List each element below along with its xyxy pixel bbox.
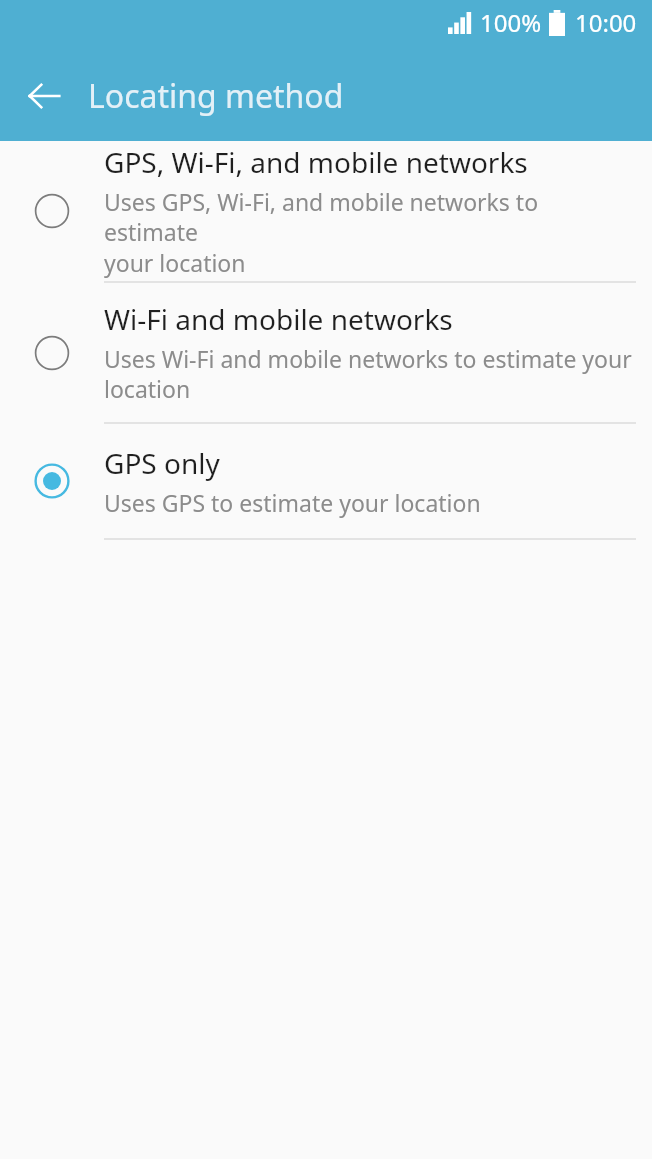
staticText: GPS only	[104, 444, 220, 482]
button[interactable]: GPS, Wi-Fi, and mobile networks	[0, 141, 652, 281]
staticText: Uses GPS, Wi-Fi, and mobile networks to …	[104, 186, 636, 279]
button[interactable]: GPS only	[0, 424, 652, 538]
staticText: Uses Wi-Fi and mobile networks to estima…	[104, 343, 632, 405]
button[interactable]: Wi-Fi and mobile networks	[0, 283, 652, 422]
staticText: 10:00	[575, 6, 637, 39]
staticText: Wi-Fi and mobile networks	[104, 300, 453, 338]
button[interactable]: Back	[16, 68, 72, 124]
staticText: 100%	[480, 6, 542, 39]
staticText: GPS, Wi-Fi, and mobile networks	[104, 143, 528, 181]
staticText: Uses GPS to estimate your location	[104, 487, 481, 518]
staticText: Locating method	[88, 74, 344, 118]
